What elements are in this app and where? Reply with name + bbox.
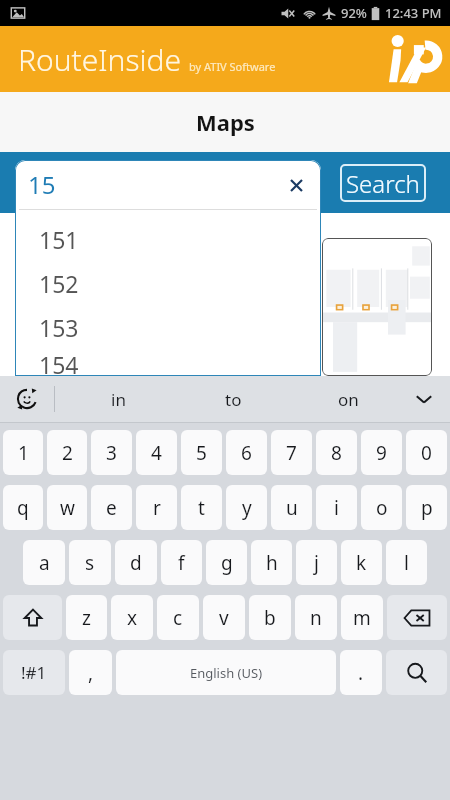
button[interactable]: . [340,650,382,695]
staticText: 9 [376,440,387,466]
button[interactable]: j [296,540,337,585]
staticText: p [421,495,433,521]
button[interactable]: n [295,595,337,640]
staticText: h [266,550,278,576]
button[interactable]: l [386,540,427,585]
staticText: 12:43 PM [385,4,442,22]
staticText: Maps [196,107,255,137]
button[interactable]: 1 [3,430,43,475]
staticText: z [82,605,91,631]
button[interactable]: 0 [406,430,447,475]
button[interactable]: 151 [15,217,321,261]
button[interactable]: i [316,485,357,530]
staticText: 6 [241,440,252,466]
button[interactable]: y [226,485,267,530]
staticText: v [219,605,229,631]
button[interactable]: q [3,485,43,530]
button[interactable]: Expand suggestions [410,385,438,413]
button[interactable]: Backspace [387,595,447,640]
button[interactable]: Emoji [12,384,42,414]
staticText: English (US) [190,664,263,682]
button[interactable]: 6 [226,430,267,475]
button[interactable]: z [66,595,107,640]
button[interactable] [322,238,432,376]
staticText: d [130,550,142,576]
staticText: x [127,605,138,631]
button[interactable]: e [91,485,132,530]
staticText: 5 [196,440,207,466]
staticText: Search [346,167,420,200]
staticText: t [198,495,205,521]
staticText: 3 [106,440,117,466]
staticText: m [353,605,371,631]
staticText: c [173,605,183,631]
button[interactable]: u [271,485,312,530]
staticText: k [356,550,367,576]
staticText: 0 [421,440,432,466]
button[interactable]: x [111,595,153,640]
button[interactable]: 152 [15,261,321,305]
staticText: 7 [286,440,297,466]
button[interactable]: h [251,540,292,585]
button[interactable]: 9 [361,430,402,475]
staticText: l [404,550,409,576]
button[interactable]: Search [386,650,447,695]
other: RouteInside logo [382,30,440,88]
staticText: g [221,550,233,576]
button[interactable]: !#1 [3,650,65,695]
staticText: 2 [62,440,73,466]
button[interactable]: k [341,540,382,585]
staticText: a [39,550,50,576]
staticText: in [111,388,126,411]
button[interactable]: g [206,540,247,585]
staticText: f [178,550,185,576]
staticText: to [225,388,242,411]
button[interactable]: 153 [15,305,321,349]
button[interactable]: Shift [3,595,62,640]
button[interactable]: v [203,595,245,640]
staticText: 154 [39,349,79,376]
staticText: q [17,495,29,521]
button[interactable]: f [161,540,202,585]
button[interactable]: 4 [136,430,177,475]
button[interactable]: Search [340,164,426,202]
button[interactable]: 8 [316,430,357,475]
button[interactable]: 2 [47,430,87,475]
staticText: r [153,495,161,521]
button[interactable]: c [157,595,199,640]
button[interactable]: 3 [91,430,132,475]
staticText: i [334,495,339,521]
button[interactable]: on [291,376,406,422]
staticText: 15 [28,168,56,201]
staticText: u [286,495,298,521]
button[interactable]: p [406,485,447,530]
button[interactable]: r [136,485,177,530]
staticText: RouteInside [18,39,181,80]
button[interactable]: o [361,485,402,530]
button[interactable]: 7 [271,430,312,475]
button[interactable]: d [115,540,157,585]
staticText: b [264,605,276,631]
button[interactable]: 5 [181,430,222,475]
button[interactable]: in [60,376,176,422]
button[interactable]: s [69,540,111,585]
button[interactable]: m [341,595,383,640]
button[interactable]: Clear text [285,174,307,196]
staticText: j [314,550,319,576]
button[interactable]: to [176,376,291,422]
staticText: o [376,495,388,521]
button[interactable]: English (US) [116,650,336,695]
staticText: 151 [39,224,79,255]
button[interactable]: , [69,650,112,695]
button[interactable]: w [47,485,87,530]
button[interactable]: a [23,540,65,585]
button[interactable]: b [249,595,291,640]
staticText: , [88,660,94,686]
staticText: . [358,660,364,686]
button[interactable]: 15 [15,160,321,209]
staticText: !#1 [21,661,47,684]
staticText: by ATIV Software [189,59,276,74]
button[interactable]: 154 [15,349,321,376]
staticText: w [60,495,75,521]
button[interactable]: t [181,485,222,530]
